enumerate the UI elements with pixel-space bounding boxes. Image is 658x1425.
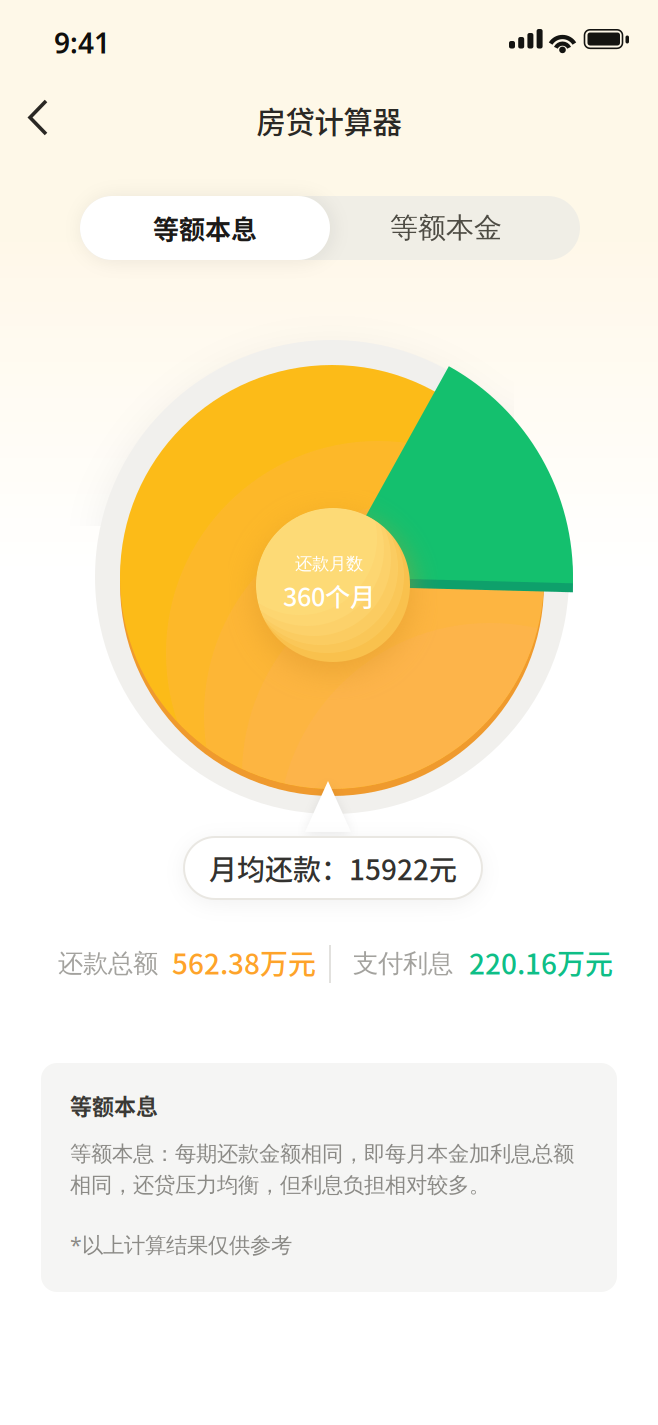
staticText: 等额本金 — [390, 211, 502, 245]
staticText: 月均还款：15922元 — [209, 848, 457, 888]
staticText: *以上计算结果仅供参考 — [70, 1230, 292, 1259]
staticText: 支付利息 — [353, 948, 453, 979]
staticText: 9:41 — [54, 24, 110, 61]
staticText: 220.16万元 — [469, 942, 613, 982]
button[interactable]: Back — [0, 0, 76, 160]
button[interactable]: 等额本金 — [321, 196, 571, 260]
staticText: 等额本息 — [70, 1089, 158, 1121]
staticText: 562.38万元 — [172, 942, 316, 982]
staticText: 等额本息：每期还款金额相同，即每月本金加利息总额 — [70, 1141, 574, 1167]
staticText: 360个月 — [283, 577, 375, 614]
staticText: 相同，还贷压力均衡，但利息负担相对较多。 — [70, 1172, 490, 1198]
staticText: 还款月数 — [295, 553, 363, 574]
staticText: 还款总额 — [58, 948, 158, 979]
button[interactable]: 等额本息 — [80, 196, 330, 260]
staticText: 等额本息 — [153, 209, 257, 247]
staticText: 房贷计算器 — [256, 99, 401, 141]
